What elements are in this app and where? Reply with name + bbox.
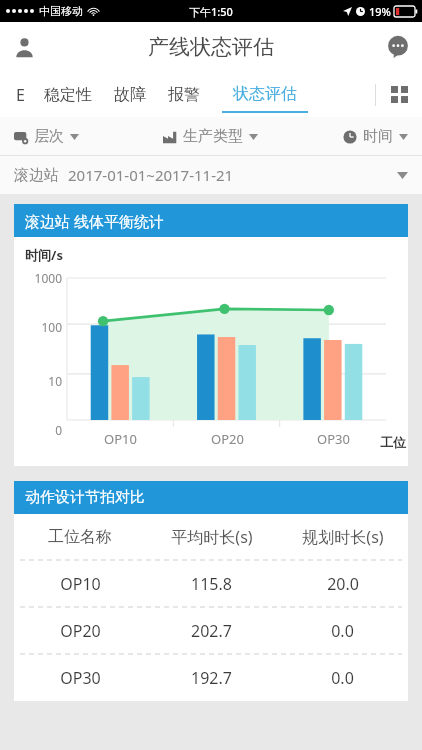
- button[interactable]: 状态评估: [211, 72, 319, 117]
- staticText: 10: [18, 373, 62, 389]
- button[interactable]: 生产类型: [140, 117, 281, 155]
- staticText: 192.7: [191, 667, 232, 689]
- button[interactable]: 滚边站: [0, 156, 422, 194]
- staticText: 平均时长(s): [171, 526, 253, 548]
- button[interactable]: Profile: [0, 23, 48, 71]
- button[interactable]: 稳定性: [33, 72, 103, 117]
- staticText: 工位名称: [48, 527, 112, 547]
- staticText: 故障: [114, 85, 146, 105]
- button[interactable]: 滚边站 线体平衡统计: [14, 204, 408, 237]
- button[interactable]: 动作设计节拍对比: [14, 481, 408, 514]
- staticText: OP10: [60, 573, 101, 595]
- staticText: 0: [18, 422, 62, 438]
- button[interactable]: E: [8, 72, 33, 117]
- staticText: 1000: [18, 270, 62, 286]
- staticText: 稳定性: [44, 85, 92, 105]
- button[interactable]: OP10: [14, 561, 408, 607]
- button[interactable]: OP30: [14, 655, 408, 701]
- staticText: 动作设计节拍对比: [25, 488, 145, 507]
- staticText: OP30: [60, 667, 101, 689]
- button[interactable]: 故障: [103, 72, 157, 117]
- staticText: 产线状态评估: [148, 34, 274, 60]
- staticText: OP20: [211, 430, 244, 448]
- staticText: 报警: [168, 85, 200, 105]
- staticText: E: [16, 84, 25, 106]
- staticText: 100: [18, 319, 62, 335]
- staticText: 中国移动: [39, 4, 83, 18]
- button[interactable]: 报警: [157, 72, 211, 117]
- staticText: 生产类型: [183, 127, 243, 146]
- staticText: OP20: [60, 620, 101, 642]
- button[interactable]: 层次: [0, 117, 140, 155]
- staticText: 19%: [369, 4, 391, 19]
- staticText: 2017-01-01~2017-11-21: [68, 165, 234, 185]
- staticText: 202.7: [191, 620, 232, 642]
- staticText: OP30: [317, 430, 350, 448]
- staticText: 115.8: [191, 573, 232, 595]
- staticText: 0.0: [331, 667, 354, 689]
- button[interactable]: More options: [374, 23, 422, 71]
- staticText: 规划时长(s): [302, 526, 384, 548]
- staticText: OP10: [104, 430, 137, 448]
- staticText: 工位: [380, 434, 406, 450]
- button[interactable]: OP20: [14, 608, 408, 654]
- button[interactable]: 工位名称: [14, 514, 408, 560]
- staticText: 层次: [34, 127, 64, 146]
- staticText: 时间/s: [25, 246, 63, 264]
- staticText: 状态评估: [233, 84, 297, 104]
- button[interactable]: Grid view: [376, 72, 422, 117]
- staticText: 下午1:50: [189, 4, 233, 19]
- staticText: 时间: [363, 127, 393, 146]
- staticText: 0.0: [331, 620, 354, 642]
- button[interactable]: 时间: [281, 117, 422, 155]
- staticText: 20.0: [327, 573, 359, 595]
- staticText: 滚边站: [14, 166, 59, 185]
- staticText: 滚边站 线体平衡统计: [25, 211, 164, 231]
